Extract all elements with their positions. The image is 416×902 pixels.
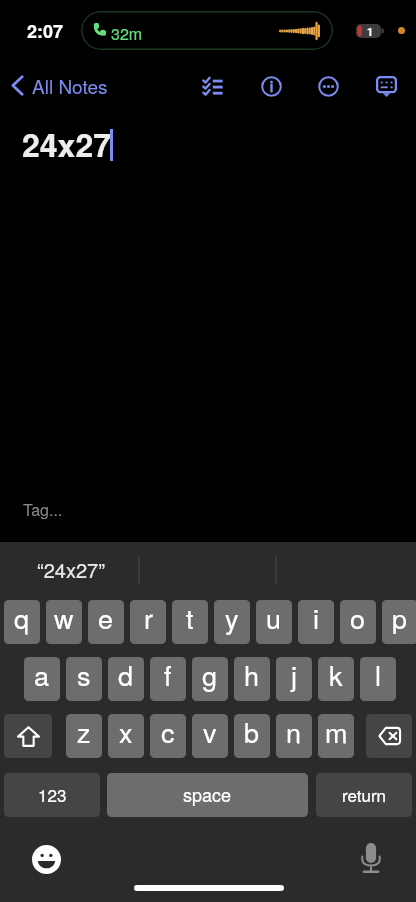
staticText: h [244, 657, 260, 694]
button[interactable]: Checklist [194, 67, 232, 105]
button[interactable]: h [234, 657, 270, 701]
staticText: 24x27 [22, 121, 111, 167]
button[interactable]: Shift [4, 714, 52, 758]
staticText: 1 [367, 24, 374, 40]
button[interactable]: Delete [366, 714, 412, 758]
staticText: a [34, 657, 50, 694]
button[interactable]: o [340, 600, 376, 644]
button[interactable]: w [46, 600, 82, 644]
staticText: j [291, 657, 297, 694]
staticText: v [203, 714, 217, 751]
staticText: q [14, 600, 30, 637]
button[interactable]: Info [252, 67, 290, 105]
button[interactable]: Emoji [26, 839, 66, 879]
button[interactable]: y [214, 600, 250, 644]
staticText: r [144, 600, 153, 637]
button[interactable]: c [150, 714, 186, 758]
button[interactable]: All Notes [4, 66, 118, 105]
button[interactable]: return [316, 773, 412, 817]
staticText: c [161, 714, 175, 751]
staticText: space [183, 781, 232, 807]
button[interactable]: m [318, 714, 354, 758]
button[interactable]: a [24, 657, 60, 701]
staticText: Tag... [23, 498, 63, 521]
staticText: 32m [111, 22, 143, 45]
staticText: i [313, 600, 319, 637]
staticText: All Notes [32, 72, 108, 99]
button[interactable]: k [318, 657, 354, 701]
button[interactable]: e [88, 600, 124, 644]
button[interactable]: v [192, 714, 228, 758]
button[interactable]: z [66, 714, 102, 758]
button[interactable]: s [66, 657, 102, 701]
button[interactable]: d [108, 657, 144, 701]
staticText: y [225, 600, 239, 637]
button[interactable]: 123 [4, 773, 100, 817]
button[interactable]: u [256, 600, 292, 644]
button[interactable]: q [4, 600, 40, 644]
button[interactable]: j [276, 657, 312, 701]
staticText: l [375, 657, 381, 694]
button[interactable]: space [107, 773, 308, 817]
staticText: f [164, 657, 172, 694]
button[interactable]: p [382, 600, 416, 644]
staticText: b [244, 714, 260, 751]
button[interactable]: More options [309, 67, 347, 105]
button[interactable]: 32m [81, 11, 333, 50]
button[interactable]: Dictation [351, 838, 391, 878]
staticText: o [350, 600, 366, 637]
staticText: w [54, 600, 74, 637]
button[interactable]: n [276, 714, 312, 758]
staticText: p [392, 600, 408, 637]
button[interactable]: Hide keyboard [367, 67, 405, 105]
button[interactable]: “24x27” [37, 555, 105, 584]
staticText: 2:07 [27, 18, 64, 44]
staticText: s [77, 657, 91, 694]
button[interactable]: f [150, 657, 186, 701]
staticText: n [286, 714, 302, 751]
staticText: g [202, 657, 218, 694]
button[interactable]: i [298, 600, 334, 644]
button[interactable]: t [172, 600, 208, 644]
staticText: u [266, 600, 282, 637]
button[interactable]: r [130, 600, 166, 644]
button[interactable]: x [108, 714, 144, 758]
staticText: 123 [38, 782, 67, 806]
staticText: d [118, 657, 134, 694]
staticText: z [77, 714, 91, 751]
button[interactable]: b [234, 714, 270, 758]
staticText: e [98, 600, 114, 637]
staticText: return [342, 782, 387, 806]
staticText: t [186, 600, 194, 637]
staticText: m [325, 714, 348, 751]
staticText: k [329, 657, 343, 694]
button[interactable]: g [192, 657, 228, 701]
staticText: x [119, 714, 133, 751]
button[interactable]: l [360, 657, 396, 701]
